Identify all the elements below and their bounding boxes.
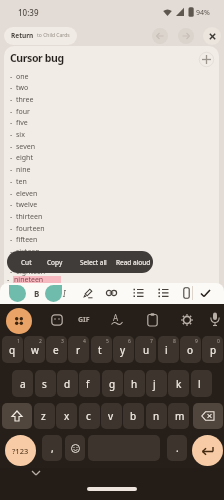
button[interactable]: [57, 370, 78, 397]
staticText: -: [10, 235, 13, 245]
staticText: 9: [195, 338, 198, 345]
staticText: -: [10, 267, 13, 277]
button[interactable]: [91, 336, 112, 363]
button[interactable]: [79, 370, 100, 397]
staticText: 0: [217, 338, 220, 345]
staticText: sixteen: [16, 247, 40, 257]
button[interactable]: [68, 336, 89, 363]
button[interactable]: [124, 370, 145, 397]
button[interactable]: [192, 435, 223, 466]
button[interactable]: [35, 370, 56, 397]
staticText: j: [153, 377, 156, 391]
staticText: to Child Cards: [37, 32, 70, 39]
staticText: l: [198, 377, 201, 391]
button[interactable]: Return: [4, 27, 77, 45]
staticText: eight: [16, 153, 33, 163]
button[interactable]: [51, 314, 63, 326]
staticText: -: [10, 83, 13, 93]
staticText: -: [10, 130, 13, 140]
staticText: 3: [61, 338, 64, 345]
staticText: r: [76, 343, 81, 357]
button[interactable]: [2, 403, 32, 429]
staticText: three: [16, 95, 34, 105]
button[interactable]: [203, 27, 221, 45]
staticText: Return: [11, 31, 34, 40]
staticText: Select all: [80, 258, 107, 267]
staticText: 4: [83, 338, 86, 345]
staticText: -: [10, 118, 13, 128]
staticText: one: [16, 72, 29, 82]
button[interactable]: [65, 435, 85, 461]
staticText: q: [9, 343, 16, 357]
button[interactable]: [31, 470, 41, 476]
button[interactable]: ?123: [5, 435, 36, 466]
staticText: 7: [150, 338, 153, 345]
staticText: .: [176, 441, 179, 455]
staticText: 94%: [196, 8, 210, 18]
button[interactable]: [102, 370, 123, 397]
button[interactable]: [46, 336, 67, 363]
staticText: -: [10, 72, 13, 82]
button[interactable]: [202, 336, 223, 363]
button[interactable]: [12, 370, 33, 397]
staticText: two: [16, 83, 29, 93]
staticText: 5: [106, 338, 109, 345]
staticText: -: [10, 95, 13, 105]
staticText: ,: [51, 441, 54, 455]
button[interactable]: ,: [42, 435, 62, 461]
button[interactable]: [2, 336, 23, 363]
button[interactable]: [147, 313, 158, 327]
staticText: h: [131, 377, 138, 391]
button[interactable]: [135, 336, 156, 363]
button[interactable]: [113, 336, 134, 363]
staticText: six: [16, 130, 25, 140]
staticText: Read aloud: [116, 258, 151, 267]
button[interactable]: [193, 403, 223, 429]
button[interactable]: [56, 403, 77, 429]
button[interactable]: [191, 370, 212, 397]
staticText: -: [10, 107, 13, 117]
button[interactable]: [79, 403, 100, 429]
staticText: Copy: [47, 258, 63, 267]
button[interactable]: [181, 314, 193, 326]
button[interactable]: [146, 370, 167, 397]
staticText: u: [143, 343, 150, 357]
button[interactable]: [24, 336, 45, 363]
staticText: twelve: [16, 200, 38, 210]
staticText: p: [210, 343, 217, 357]
button[interactable]: [178, 28, 194, 44]
staticText: A: [113, 312, 119, 323]
button[interactable]: [158, 336, 179, 363]
staticText: 8: [173, 338, 176, 345]
staticText: nine: [16, 165, 31, 175]
staticText: 10:39: [18, 7, 39, 18]
button[interactable]: [199, 52, 214, 67]
button[interactable]: [123, 403, 144, 429]
staticText: e: [53, 343, 59, 357]
button[interactable]: [168, 370, 189, 397]
staticText: Cursor bug: [10, 51, 64, 65]
staticText: ten: [16, 177, 27, 187]
button[interactable]: [146, 403, 167, 429]
button[interactable]: [152, 28, 168, 44]
button[interactable]: [101, 403, 122, 429]
staticText: d: [64, 377, 71, 391]
staticText: nineteen: [14, 275, 44, 285]
button[interactable]: [34, 403, 55, 429]
staticText: fourteen: [16, 224, 45, 234]
button[interactable]: [180, 336, 201, 363]
button[interactable]: .: [167, 435, 187, 461]
staticText: eleven: [16, 189, 38, 199]
staticText: eighteen: [16, 267, 46, 277]
staticText: y: [120, 343, 126, 357]
staticText: a: [20, 377, 26, 391]
staticText: o: [187, 343, 194, 357]
staticText: n: [153, 409, 160, 423]
staticText: seven: [16, 142, 35, 152]
staticText: 2: [39, 338, 42, 345]
button[interactable]: [210, 312, 220, 327]
button[interactable]: [6, 308, 32, 334]
button[interactable]: [168, 403, 189, 429]
staticText: i: [165, 343, 168, 357]
